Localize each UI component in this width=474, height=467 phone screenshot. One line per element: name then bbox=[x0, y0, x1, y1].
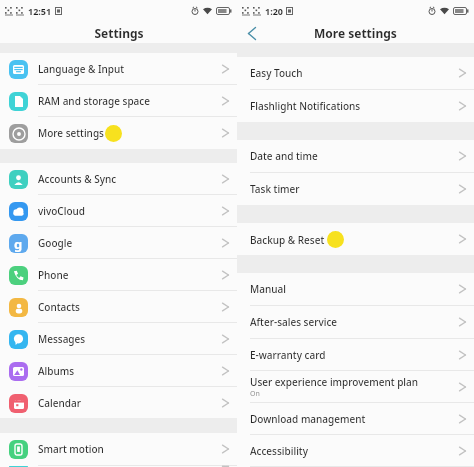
button[interactable]: After-sales service bbox=[237, 306, 474, 338]
staticText: Language & Input bbox=[38, 62, 125, 76]
staticText: Settings bbox=[94, 25, 144, 41]
staticText: Date and time bbox=[250, 149, 318, 163]
button[interactable]: Phone bbox=[0, 259, 237, 290]
staticText: On bbox=[250, 389, 260, 399]
staticText: Accounts & Sync bbox=[38, 172, 117, 186]
staticText: Albums bbox=[38, 364, 75, 378]
button[interactable]: Backup & Reset bbox=[237, 223, 474, 255]
button[interactable]: Smart motion bbox=[0, 433, 237, 465]
staticText: 1:20 bbox=[265, 5, 283, 17]
button[interactable]: g bbox=[0, 227, 237, 258]
staticText: 12:51 bbox=[28, 5, 52, 17]
button[interactable]: Contacts bbox=[0, 291, 237, 322]
staticText: Download management bbox=[250, 412, 366, 426]
button[interactable]: E-warranty card bbox=[237, 339, 474, 370]
staticText: Task timer bbox=[250, 182, 300, 196]
staticText: Manual bbox=[250, 282, 286, 296]
button[interactable]: Easy Touch bbox=[237, 57, 474, 89]
staticText: Easy Touch bbox=[250, 66, 303, 80]
staticText: Calendar bbox=[38, 396, 81, 410]
staticText: Smart motion bbox=[38, 442, 104, 456]
button[interactable]: RAM and storage space bbox=[0, 85, 237, 116]
staticText: Accessibility bbox=[250, 444, 308, 458]
staticText: Google bbox=[38, 236, 73, 250]
staticText: More settings bbox=[314, 25, 397, 41]
staticText: After-sales service bbox=[250, 315, 338, 329]
staticText: Flashlight Notifications bbox=[250, 99, 361, 113]
staticText: vivoCloud bbox=[38, 204, 85, 218]
button[interactable]: Task timer bbox=[237, 173, 474, 205]
staticText: Contacts bbox=[38, 300, 80, 314]
button[interactable]: Flashlight Notifications bbox=[237, 90, 474, 122]
staticText: E-warranty card bbox=[250, 348, 326, 362]
button[interactable]: Calendar bbox=[0, 387, 237, 418]
staticText: More settings bbox=[38, 126, 104, 140]
staticText: Backup & Reset bbox=[250, 233, 325, 247]
button[interactable]: User experience improvement plan bbox=[237, 371, 474, 402]
staticText: Phone bbox=[38, 268, 69, 282]
staticText: g bbox=[14, 235, 23, 253]
staticText: Messages bbox=[38, 332, 86, 346]
button[interactable]: Manual bbox=[237, 273, 474, 305]
button[interactable]: More settings bbox=[0, 117, 237, 149]
button[interactable]: Back bbox=[243, 24, 261, 42]
button[interactable]: Messages bbox=[0, 323, 237, 354]
staticText: RAM and storage space bbox=[38, 94, 150, 108]
button[interactable]: Language & Input bbox=[0, 53, 237, 84]
button[interactable]: Albums bbox=[0, 355, 237, 386]
button[interactable]: Date and time bbox=[237, 140, 474, 172]
staticText: User experience improvement plan bbox=[250, 375, 419, 389]
button[interactable]: Accessibility bbox=[237, 435, 474, 466]
button[interactable]: vivoCloud bbox=[0, 195, 237, 226]
button[interactable] bbox=[0, 466, 237, 467]
button[interactable]: Download management bbox=[237, 403, 474, 434]
button[interactable]: Accounts & Sync bbox=[0, 163, 237, 194]
